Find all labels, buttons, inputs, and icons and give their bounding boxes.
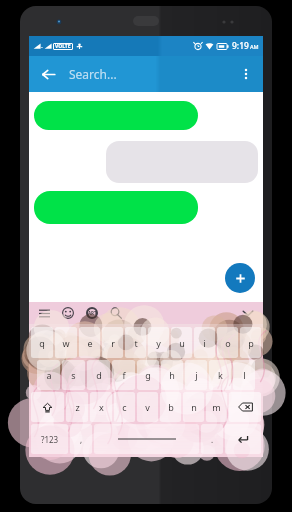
button[interactable]: i: [194, 327, 215, 358]
button[interactable]: m: [206, 392, 227, 422]
staticText: .: [211, 434, 214, 445]
button[interactable]: l: [233, 360, 255, 390]
button[interactable]: z: [66, 392, 88, 422]
staticText: k: [218, 369, 223, 381]
button[interactable]: c: [114, 392, 135, 422]
button[interactable]: r: [102, 327, 123, 358]
other: Enter: [237, 433, 249, 445]
staticText: i: [203, 337, 206, 349]
staticText: c: [122, 401, 127, 413]
staticText: z: [75, 401, 80, 413]
button[interactable]: u: [171, 327, 192, 358]
staticText: t: [134, 337, 138, 349]
button[interactable]: .: [201, 424, 223, 454]
staticText: w: [62, 337, 70, 349]
staticText: n: [191, 401, 197, 413]
button[interactable]: q: [31, 327, 53, 358]
button[interactable]: v: [137, 392, 158, 422]
button[interactable]: [34, 191, 198, 224]
button[interactable]: t: [125, 327, 146, 358]
staticText: m: [212, 401, 221, 413]
button[interactable]: e: [79, 327, 100, 358]
button[interactable]: w: [55, 327, 77, 358]
staticText: d: [96, 369, 102, 381]
staticText: .: [41, 41, 43, 51]
staticText: VOLTE: [55, 43, 71, 50]
other: Shift: [42, 402, 53, 413]
button[interactable]: Menu: [35, 304, 53, 322]
button[interactable]: Emoji: [59, 304, 77, 322]
staticText: u: [179, 337, 185, 349]
button[interactable]: b: [160, 392, 181, 422]
button[interactable]: Hide keyboard: [239, 304, 257, 322]
button[interactable]: n: [183, 392, 204, 422]
button[interactable]: Art: [83, 304, 101, 322]
button[interactable]: h: [161, 360, 183, 390]
staticText: g: [145, 369, 151, 381]
staticText: ART: [88, 310, 97, 316]
button[interactable]: o: [217, 327, 238, 358]
staticText: x: [99, 401, 104, 413]
staticText: r: [111, 337, 115, 349]
button[interactable]: f: [112, 360, 135, 390]
staticText: ?123: [41, 434, 59, 445]
button[interactable]: Shift: [31, 392, 64, 422]
staticText: y: [156, 337, 161, 349]
button[interactable]: s: [62, 360, 85, 390]
staticText: Search...: [69, 66, 117, 82]
staticText: o: [225, 337, 231, 349]
button[interactable]: New message: [225, 263, 255, 293]
button[interactable]: More options: [233, 61, 259, 87]
button[interactable]: ,: [70, 424, 92, 454]
staticText: AM: [250, 43, 259, 50]
button[interactable]: p: [240, 327, 261, 358]
button[interactable]: [94, 424, 199, 454]
staticText: f: [122, 369, 126, 381]
staticText: e: [87, 337, 93, 349]
button[interactable]: ?123: [31, 424, 68, 454]
staticText: q: [39, 337, 45, 349]
staticText: v: [145, 401, 150, 413]
button[interactable]: a: [37, 360, 60, 390]
button[interactable]: Search: [107, 304, 125, 322]
other: Backspace: [238, 402, 253, 412]
button[interactable]: [106, 141, 258, 183]
staticText: j: [195, 369, 198, 381]
button[interactable]: Back: [35, 61, 61, 87]
staticText: l: [243, 369, 246, 381]
staticText: ,: [80, 434, 83, 445]
button[interactable]: k: [209, 360, 231, 390]
button[interactable]: j: [185, 360, 207, 390]
button[interactable]: g: [137, 360, 159, 390]
staticText: s: [71, 369, 76, 381]
staticText: a: [46, 369, 52, 381]
staticText: h: [169, 369, 175, 381]
button[interactable]: x: [90, 392, 112, 422]
button[interactable]: Backspace: [229, 392, 261, 422]
button[interactable]: Enter: [225, 424, 261, 454]
button[interactable]: y: [148, 327, 169, 358]
staticText: b: [168, 401, 174, 413]
button[interactable]: Search...: [69, 56, 233, 92]
staticText: 9:19: [232, 40, 249, 52]
button[interactable]: [34, 101, 198, 130]
staticText: p: [248, 337, 254, 349]
button[interactable]: d: [87, 360, 110, 390]
